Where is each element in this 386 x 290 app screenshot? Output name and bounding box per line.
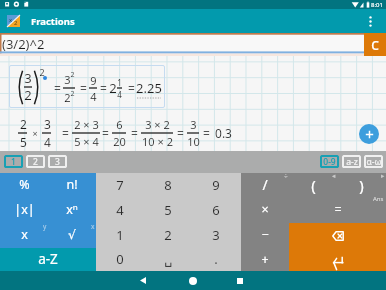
button[interactable]: × <box>241 198 289 223</box>
button[interactable]: % <box>0 173 48 198</box>
staticText: x <box>21 226 28 243</box>
staticText: 7 <box>116 176 124 194</box>
staticText: xⁿ <box>66 201 78 218</box>
staticText: a-z <box>346 156 358 168</box>
button[interactable]: √ <box>48 223 96 248</box>
staticText: 2.25 <box>136 79 162 97</box>
staticText: = <box>334 201 342 218</box>
staticText: 2 <box>24 86 32 104</box>
button[interactable]: = <box>289 198 386 223</box>
button[interactable]: 1 <box>96 223 144 248</box>
button[interactable]: 5 <box>144 198 192 223</box>
button[interactable]: a-z <box>342 155 361 168</box>
staticText: 1 <box>11 156 16 168</box>
staticText: Ans <box>373 195 384 203</box>
button[interactable]: ( <box>289 173 337 198</box>
button[interactable]: More options <box>358 9 382 33</box>
staticText: 3 <box>24 69 32 87</box>
staticText: 10 <box>187 134 200 149</box>
button[interactable]: Add <box>359 124 379 144</box>
button[interactable]: 2 <box>26 155 45 168</box>
button[interactable]: 8 <box>144 173 192 198</box>
button[interactable]: ␣ <box>144 248 192 272</box>
staticText: 0.3 <box>215 125 232 141</box>
button[interactable]: C <box>364 33 386 56</box>
staticText: = <box>100 80 107 96</box>
button[interactable]: Home <box>182 271 204 290</box>
button[interactable]: (3/2)^2 <box>0 33 364 56</box>
staticText: ÷ <box>284 172 288 181</box>
staticText: 4 <box>90 89 97 104</box>
staticText: 2 <box>14 19 18 27</box>
staticText: ␣ <box>164 252 173 267</box>
staticText: 3 <box>44 116 51 132</box>
staticText: Fractions <box>31 15 75 28</box>
staticText: = <box>177 125 184 141</box>
staticText: 2 <box>20 116 27 132</box>
button[interactable]: 3 <box>48 155 67 168</box>
staticText: 2 × 3 <box>74 117 99 132</box>
button[interactable]: x <box>0 223 48 248</box>
staticText: 8 <box>164 176 172 194</box>
staticText: / <box>262 175 268 194</box>
staticText: ◂ <box>332 172 336 180</box>
staticText: 2 <box>39 66 45 78</box>
button[interactable]: 1 <box>4 155 23 168</box>
staticText: = <box>80 80 87 96</box>
staticText: 8:01 <box>371 1 383 9</box>
button[interactable]: a-Z <box>0 248 96 272</box>
staticText: C <box>371 37 379 53</box>
staticText: 3 <box>55 156 60 168</box>
staticText: x <box>9 16 13 24</box>
staticText: α-ω <box>366 156 382 168</box>
button[interactable]: − <box>241 223 289 248</box>
staticText: 2 <box>70 70 75 80</box>
button[interactable]: 7 <box>96 173 144 198</box>
staticText: = <box>54 80 61 96</box>
button[interactable]: Backspace <box>289 223 386 248</box>
button[interactable]: + <box>241 248 289 272</box>
button[interactable]: Back <box>132 271 154 290</box>
staticText: ▸ <box>381 172 385 180</box>
staticText: 1 <box>117 77 122 88</box>
button[interactable]: n! <box>48 173 96 198</box>
staticText: 3 <box>64 72 71 87</box>
staticText: ( <box>311 175 316 195</box>
staticText: 2 <box>164 226 172 244</box>
staticText: (3/2)^2 <box>2 35 45 53</box>
button[interactable]: / <box>241 173 289 198</box>
staticText: x <box>91 222 95 231</box>
staticText: n! <box>66 176 78 193</box>
button[interactable]: 9 <box>192 173 240 198</box>
staticText: 2 <box>33 156 38 168</box>
staticText: 4 <box>116 201 124 219</box>
staticText: 2 <box>64 90 71 105</box>
staticText: 10 × 2 <box>142 134 173 149</box>
button[interactable]: 0-9 <box>320 155 339 168</box>
button[interactable]: |x| <box>0 198 48 223</box>
staticText: 2 <box>70 89 75 99</box>
staticText: 3 <box>190 117 197 132</box>
button[interactable]: 0 <box>96 248 144 272</box>
button[interactable]: Enter <box>289 248 386 272</box>
staticText: 4 <box>44 134 51 150</box>
staticText: a-Z <box>38 250 58 268</box>
staticText: + <box>261 251 269 268</box>
button[interactable]: 2 <box>144 223 192 248</box>
staticText: 20 <box>113 134 126 149</box>
button[interactable]: . <box>192 248 240 272</box>
staticText: 9 <box>212 176 220 194</box>
button[interactable]: α-ω <box>364 155 383 168</box>
button[interactable]: xⁿ <box>48 198 96 223</box>
button[interactable]: Recent apps <box>229 271 251 290</box>
button[interactable]: 6 <box>192 198 240 223</box>
button[interactable]: ) <box>337 173 386 198</box>
staticText: 4 <box>117 89 122 100</box>
staticText: 2 <box>109 79 117 97</box>
staticText: √ <box>68 227 76 242</box>
staticText: 3 <box>212 226 220 244</box>
staticText: 0-9 <box>323 156 336 168</box>
button[interactable]: 3 <box>192 223 240 248</box>
button[interactable]: 4 <box>96 198 144 223</box>
staticText: × <box>261 201 269 218</box>
